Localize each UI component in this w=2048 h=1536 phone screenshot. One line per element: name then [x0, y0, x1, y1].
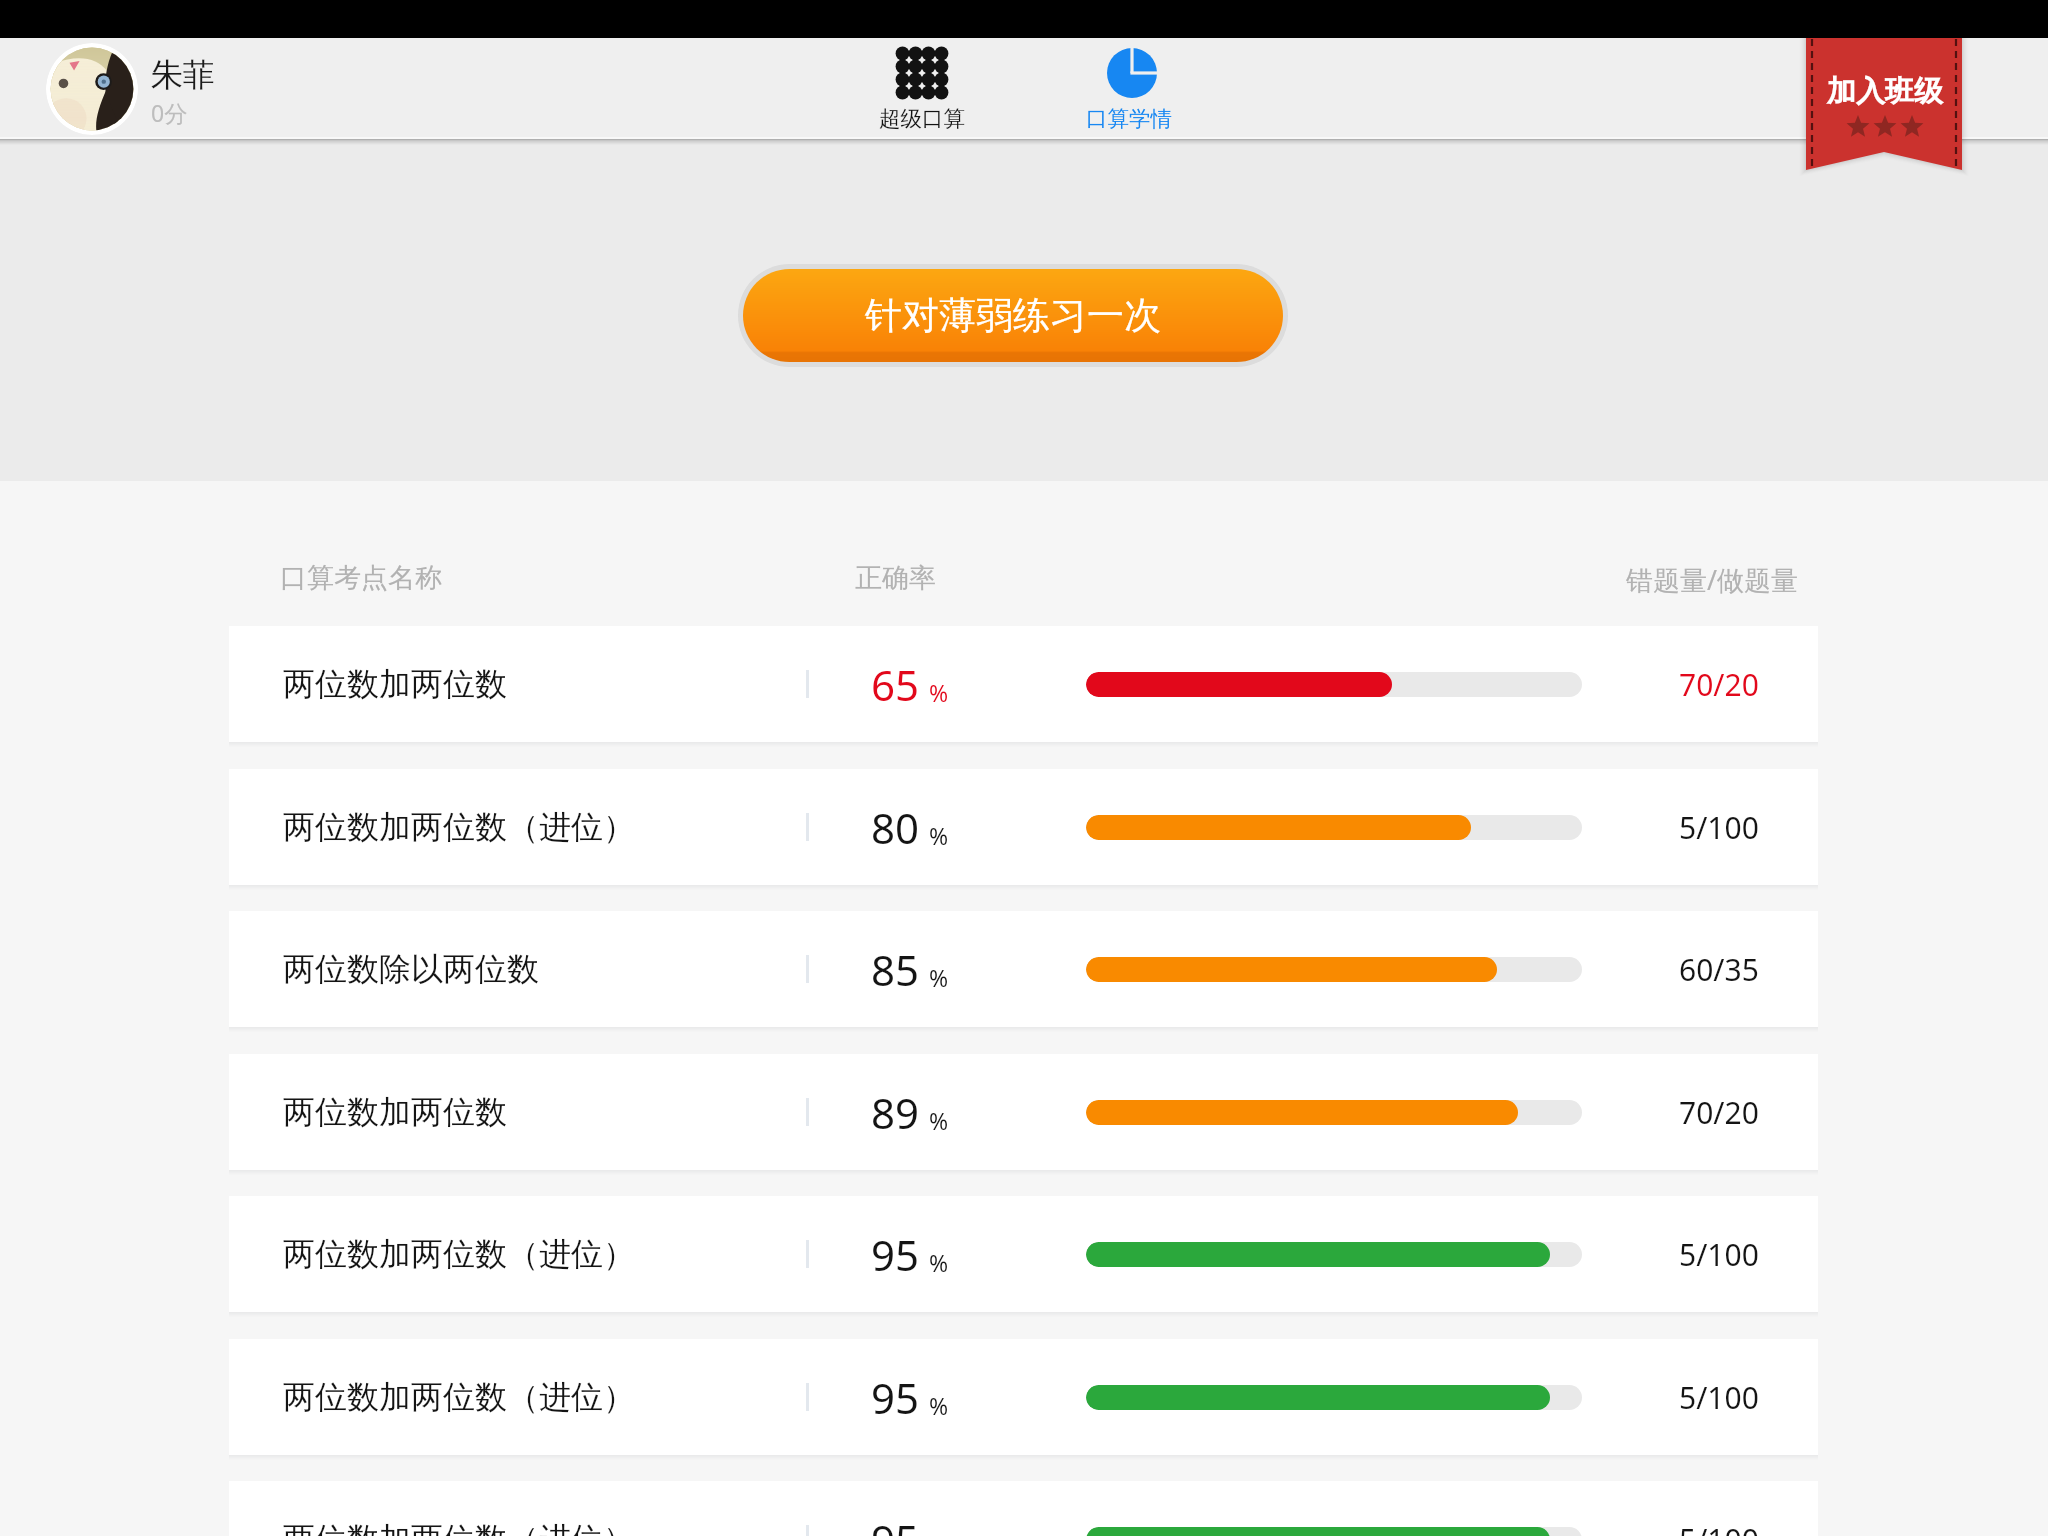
staticText: % [929, 820, 949, 851]
staticText: 0分 [151, 97, 188, 128]
staticText: 95 [871, 1369, 920, 1426]
button[interactable]: 两位数除以两位数 [229, 911, 1818, 1027]
staticText: % [929, 1105, 949, 1136]
staticText: 80 [871, 799, 920, 856]
button[interactable]: 朱菲 [46, 38, 215, 139]
button[interactable]: 超级口算 [862, 47, 982, 132]
button[interactable]: 两位数加两位数（进位） [229, 1339, 1818, 1455]
staticText: 加入班级 [1827, 73, 1943, 110]
staticText: 针对薄弱练习一次 [865, 292, 1161, 339]
button[interactable]: 口算学情 [1069, 47, 1189, 132]
staticText: 朱菲 [151, 55, 215, 95]
staticText: 65 [871, 656, 920, 713]
staticText: 口算学情 [1086, 105, 1172, 132]
staticText: 5/100 [1679, 1377, 1759, 1418]
staticText: 两位数加两位数（进位） [283, 807, 635, 847]
staticText: 两位数加两位数（进位） [283, 1234, 635, 1274]
staticText: 两位数加两位数 [283, 664, 507, 704]
staticText: 两位数加两位数（进位） [283, 1519, 635, 1536]
button[interactable]: 两位数加两位数（进位） [229, 1196, 1818, 1312]
staticText: 85 [871, 941, 920, 998]
staticText: 错题量/做题量 [1626, 561, 1799, 598]
staticText: 89 [871, 1084, 920, 1141]
button[interactable]: 两位数加两位数（进位） [229, 1481, 1818, 1536]
staticText: 两位数除以两位数 [283, 949, 539, 989]
staticText: % [929, 677, 949, 708]
staticText: 口算考点名称 [280, 561, 442, 595]
staticText: % [929, 962, 949, 993]
staticText: % [929, 1390, 949, 1421]
button[interactable]: 加入班级 [1806, 38, 1976, 188]
staticText: 70/20 [1679, 664, 1759, 705]
staticText: 95 [871, 1226, 920, 1283]
button[interactable]: 两位数加两位数 [229, 626, 1818, 742]
button[interactable]: 两位数加两位数（进位） [229, 769, 1818, 885]
staticText: 两位数加两位数（进位） [283, 1377, 635, 1417]
staticText: 正确率 [855, 561, 936, 595]
staticText: 5/100 [1679, 1519, 1759, 1536]
staticText: 70/20 [1679, 1092, 1759, 1133]
staticText: % [929, 1247, 949, 1278]
button[interactable]: 针对薄弱练习一次 [743, 269, 1283, 362]
staticText: 95 [871, 1511, 920, 1536]
staticText: 5/100 [1679, 1234, 1759, 1275]
staticText: 60/35 [1679, 949, 1759, 990]
staticText: 5/100 [1679, 807, 1759, 848]
button[interactable]: 两位数加两位数 [229, 1054, 1818, 1170]
staticText: 两位数加两位数 [283, 1092, 507, 1132]
staticText: 超级口算 [879, 105, 965, 132]
